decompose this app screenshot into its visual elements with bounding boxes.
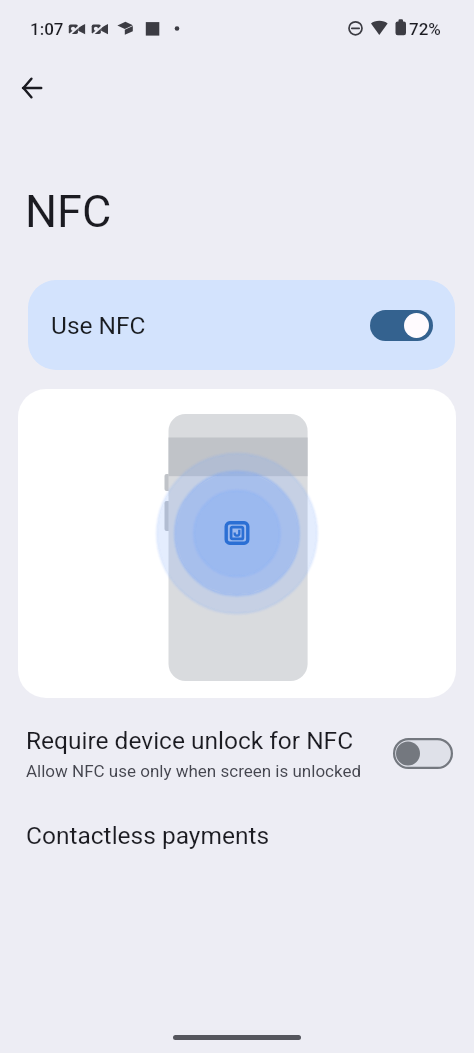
button[interactable]: Back: [10, 66, 54, 110]
staticText: 72%: [409, 19, 441, 39]
staticText: Allow NFC use only when screen is unlock…: [26, 761, 362, 781]
button[interactable]: Require device unlock for NFC: [0, 725, 474, 783]
staticText: NFC: [25, 185, 112, 238]
staticText: Use NFC: [51, 311, 146, 340]
staticText: Require device unlock for NFC: [26, 726, 354, 755]
staticText: 1:07: [30, 19, 64, 39]
staticText: Contactless payments: [26, 821, 270, 850]
button[interactable]: Use NFC: [28, 280, 455, 370]
